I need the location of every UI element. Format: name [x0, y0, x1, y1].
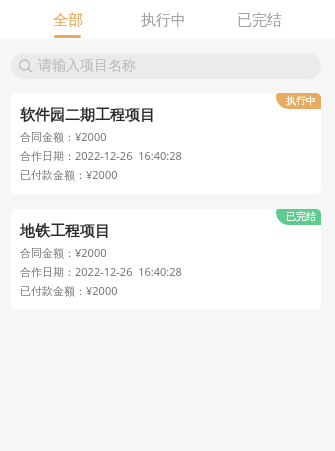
- staticText: 合同金额：¥2000: [20, 129, 107, 144]
- staticText: 合作日期：2022-12-26 16:40:28: [20, 148, 182, 163]
- button[interactable]: 执行中: [115, 0, 211, 38]
- staticText: 已完结: [286, 210, 316, 223]
- staticText: 合作日期：2022-12-26 16:40:28: [20, 264, 182, 279]
- button[interactable]: 已完结: [211, 0, 307, 38]
- staticText: 已付款金额：¥2000: [20, 283, 118, 298]
- staticText: 请输入项目名称: [38, 57, 136, 75]
- button[interactable]: 请输入项目名称: [11, 53, 321, 79]
- staticText: 全部: [53, 11, 83, 30]
- staticText: 软件园二期工程项目: [20, 106, 155, 125]
- staticText: 地铁工程项目: [20, 222, 110, 241]
- staticText: 已付款金额：¥2000: [20, 167, 118, 182]
- staticText: 已完结: [237, 11, 282, 30]
- button[interactable]: 全部: [20, 0, 115, 38]
- staticText: 执行中: [286, 94, 316, 107]
- staticText: 执行中: [141, 11, 186, 30]
- button[interactable]: 软件园二期工程项目: [11, 93, 321, 194]
- button[interactable]: 地铁工程项目: [11, 209, 321, 310]
- staticText: 合同金额：¥2000: [20, 245, 107, 260]
